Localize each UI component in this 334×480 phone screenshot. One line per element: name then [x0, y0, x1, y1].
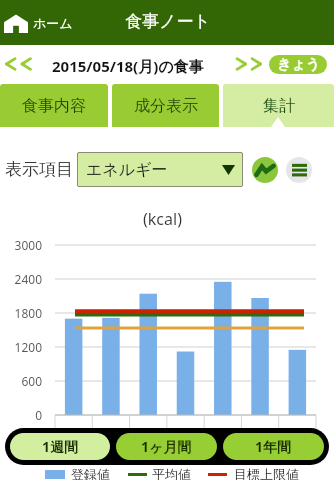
staticText: きょう: [277, 56, 320, 74]
button[interactable]: 次の日: [233, 49, 269, 79]
staticText: エネルギー: [86, 160, 222, 180]
staticText: 集計: [263, 96, 295, 116]
staticText: 目標上限値: [234, 466, 299, 480]
button[interactable]: リスト表示: [286, 157, 312, 183]
button[interactable]: 集計: [223, 84, 334, 127]
staticText: 2015/05/18(月)の食事: [52, 56, 204, 76]
staticText: 成分表示: [134, 96, 198, 116]
staticText: ホーム: [33, 15, 73, 31]
staticText: 登録値: [71, 466, 110, 480]
staticText: 1年間: [255, 437, 292, 456]
staticText: 2400: [0, 271, 42, 287]
button[interactable]: 1週間: [10, 433, 110, 460]
staticText: 食事内容: [22, 96, 86, 116]
staticText: 表示項目: [5, 159, 73, 180]
button[interactable]: 1年間: [223, 433, 324, 460]
button[interactable]: 成分表示: [112, 84, 219, 127]
staticText: 平均値: [152, 466, 191, 480]
button[interactable]: 食事内容: [0, 84, 108, 127]
button[interactable]: 1ヶ月間: [116, 433, 217, 460]
staticText: 食事ノート: [125, 11, 211, 32]
button[interactable]: グラフ表示: [252, 157, 278, 183]
staticText: 1200: [0, 339, 42, 355]
button[interactable]: ホーム: [4, 13, 73, 32]
button[interactable]: きょう: [269, 55, 327, 74]
staticText: 0: [0, 407, 42, 423]
staticText: 3000: [0, 237, 42, 253]
button[interactable]: エネルギー: [77, 152, 243, 187]
button[interactable]: 前の日: [0, 49, 38, 79]
staticText: 1ヶ月間: [141, 437, 192, 456]
staticText: 1週間: [42, 437, 79, 456]
staticText: 600: [0, 373, 42, 389]
staticText: (kcal): [143, 208, 182, 230]
staticText: 1800: [0, 305, 42, 321]
